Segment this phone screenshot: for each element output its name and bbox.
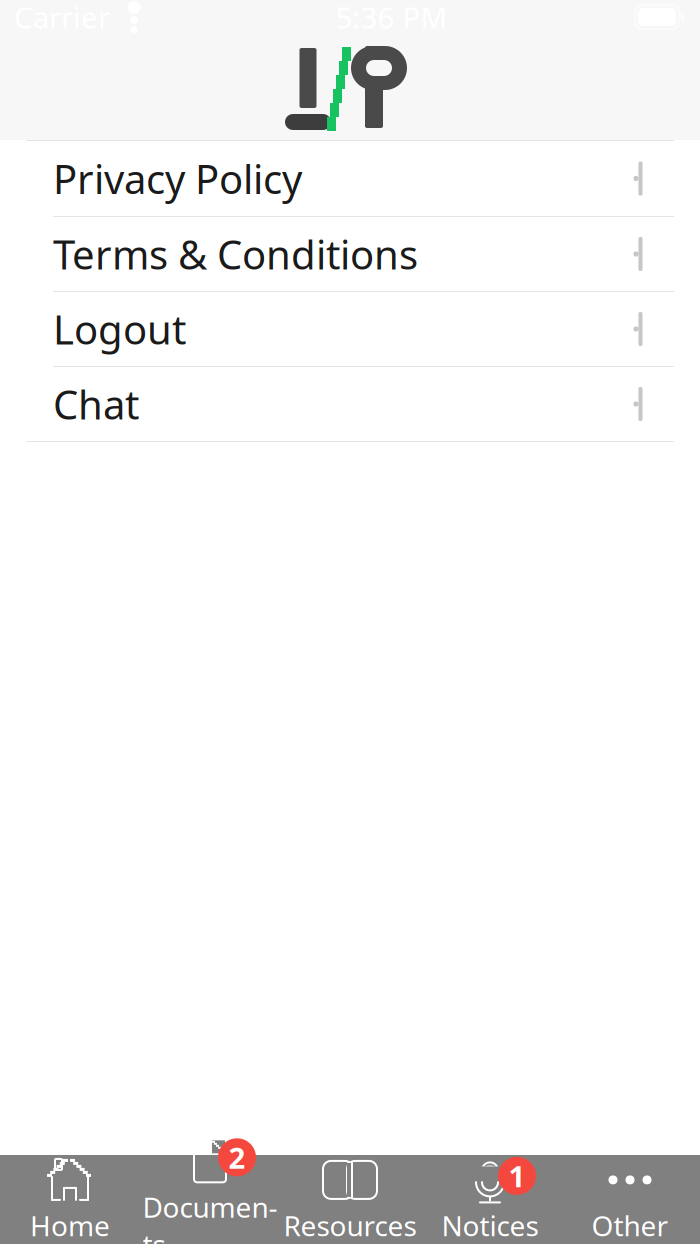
button[interactable]: 1	[420, 1155, 560, 1244]
staticText: Privacy Policy	[53, 152, 302, 205]
staticText: Home	[30, 1207, 110, 1244]
staticText: Resources	[283, 1207, 416, 1244]
button[interactable]: 2	[140, 1155, 280, 1244]
button[interactable]: Home	[0, 1155, 140, 1244]
staticText: 1	[508, 1156, 525, 1195]
staticText: Terms & Conditions	[53, 227, 418, 280]
button[interactable]: Resources	[280, 1155, 420, 1244]
button[interactable]: Privacy Policy	[0, 141, 700, 216]
staticText: 2	[228, 1138, 245, 1177]
button[interactable]: Other	[560, 1155, 700, 1244]
button[interactable]: Terms & Conditions	[0, 217, 700, 291]
button[interactable]: Chat	[0, 367, 700, 441]
staticText: Logout	[53, 302, 186, 355]
staticText: Documents	[142, 1188, 277, 1244]
staticText: Chat	[53, 377, 139, 430]
staticText: Notices	[441, 1207, 538, 1244]
button[interactable]: Logout	[0, 292, 700, 366]
staticText: Other	[591, 1207, 668, 1244]
